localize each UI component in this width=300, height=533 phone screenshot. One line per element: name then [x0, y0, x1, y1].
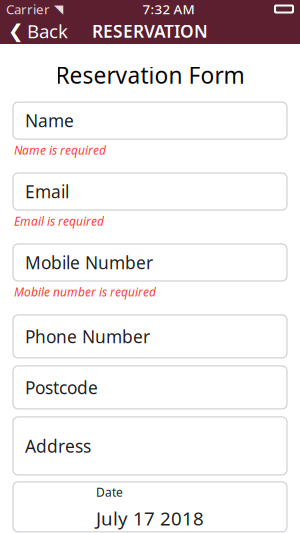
staticText: Mobile number is required — [14, 284, 156, 300]
staticText: RESERVATION — [92, 19, 208, 42]
staticText: Mobile Number — [25, 251, 153, 274]
button[interactable]: Name — [13, 102, 287, 139]
button[interactable]: Address — [13, 417, 287, 475]
staticText: 7:32 AM — [142, 0, 194, 18]
staticText: July 17 2018 — [96, 506, 204, 531]
staticText: Address — [25, 434, 91, 457]
staticText: Reservation Form — [55, 60, 244, 90]
staticText: Name — [25, 109, 74, 132]
staticText: Date — [96, 484, 123, 500]
staticText: Name is required — [14, 142, 106, 158]
staticText: ❮ — [8, 20, 24, 42]
staticText: Email is required — [14, 213, 104, 229]
button[interactable]: Phone Number — [13, 315, 287, 358]
button[interactable]: Postcode — [13, 366, 287, 409]
staticText: Back — [27, 19, 68, 43]
button[interactable]: Date — [13, 482, 287, 532]
button[interactable]: Mobile Number — [13, 244, 287, 281]
staticText: Carrier — [6, 0, 50, 18]
staticText: Postcode — [25, 376, 98, 399]
button[interactable]: ❮ — [0, 18, 76, 44]
staticText: Phone Number — [25, 325, 150, 348]
button[interactable]: Email — [13, 173, 287, 210]
staticText: Email — [25, 180, 69, 203]
staticText: ◥ — [54, 2, 63, 16]
